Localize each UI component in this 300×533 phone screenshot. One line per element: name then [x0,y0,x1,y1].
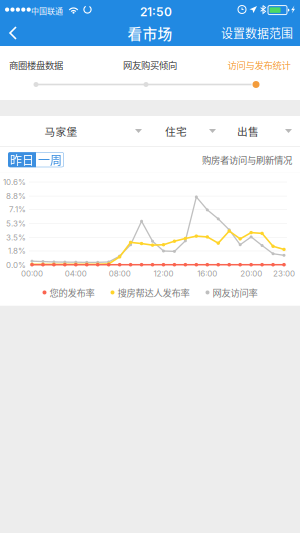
staticText: 网友购买倾向 [123,58,177,72]
staticText: 昨日 [10,151,34,168]
staticText: 中国联通 [31,5,63,17]
staticText: 8.8% [6,191,26,201]
button[interactable]: 访问与发布统计 [209,52,300,78]
staticText: 1.8% [8,246,26,256]
button[interactable]: Back [0,20,30,46]
button[interactable]: 商圈楼盘数据 [0,52,86,78]
staticText: 21:50 [140,4,172,19]
staticText: 16:00 [197,269,217,278]
staticText: 20:00 [240,269,262,278]
button[interactable]: 网友购买倾向 [100,52,200,78]
staticText: 一周 [38,151,62,168]
staticText: 23:00 [273,269,295,278]
staticText: 00:00 [21,269,43,278]
staticText: 商圈楼盘数据 [9,58,63,72]
staticText: 访问与发布统计 [227,58,290,72]
staticText: 04:00 [65,269,87,278]
staticText: 您的发布率 [49,286,94,299]
staticText: 出售 [237,123,259,139]
staticText: 马家堡 [44,123,77,139]
staticText: 08:00 [109,269,131,278]
button[interactable]: 住宅 [0,116,300,146]
button[interactable]: 一周 [36,152,64,167]
staticText: 12:00 [153,269,173,278]
staticText: 10.6% [3,177,26,187]
staticText: 搜房帮达人发布率 [117,286,189,299]
staticText: 看市场 [127,22,172,44]
staticText: 网友访问率 [212,286,257,299]
staticText: 住宅 [165,123,187,139]
staticText: 3.5% [6,233,26,242]
staticText: 0.0% [6,260,26,270]
button[interactable]: 出售 [0,116,300,146]
button[interactable]: 马家堡 [0,116,300,146]
button[interactable]: 昨日 [8,152,36,167]
staticText: 7.1% [9,205,26,214]
staticText: 设置数据范围 [221,24,293,42]
staticText: 购房者访问与刷新情况 [202,153,292,166]
button[interactable]: 设置数据范围 [218,20,296,46]
staticText: 5.3% [6,219,26,228]
